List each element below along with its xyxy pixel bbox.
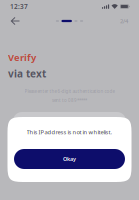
button[interactable]: Back xyxy=(4,13,26,29)
staticText: via text xyxy=(8,67,46,80)
staticText: Please enter the 6-digit authentication … xyxy=(24,88,114,94)
staticText: Verify xyxy=(8,51,36,64)
staticText: This IP address is not in whitelist. xyxy=(26,128,112,136)
button[interactable]: Okay xyxy=(14,149,125,169)
staticText: 12:37 xyxy=(10,2,28,11)
staticText: sent to 089***** xyxy=(52,97,87,103)
staticText: 2/4 xyxy=(120,17,128,25)
staticText: Okay xyxy=(63,155,76,163)
